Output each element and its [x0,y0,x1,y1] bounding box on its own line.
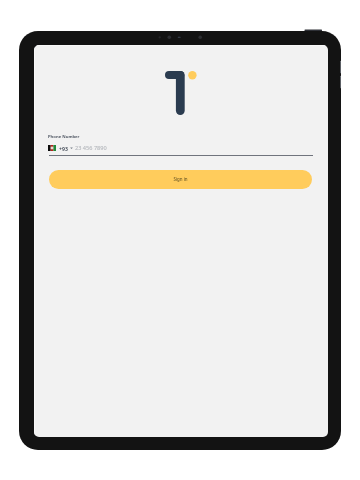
staticText: Phone Number [48,134,80,140]
button[interactable]: +93 [48,142,312,154]
button[interactable]: Sign in [49,170,312,189]
staticText: +93 [59,145,68,152]
staticText: Sign in [173,176,188,182]
other: App logo [165,71,198,116]
other: Choose country code [70,145,73,151]
staticText: 23 456 7890 [75,144,107,152]
